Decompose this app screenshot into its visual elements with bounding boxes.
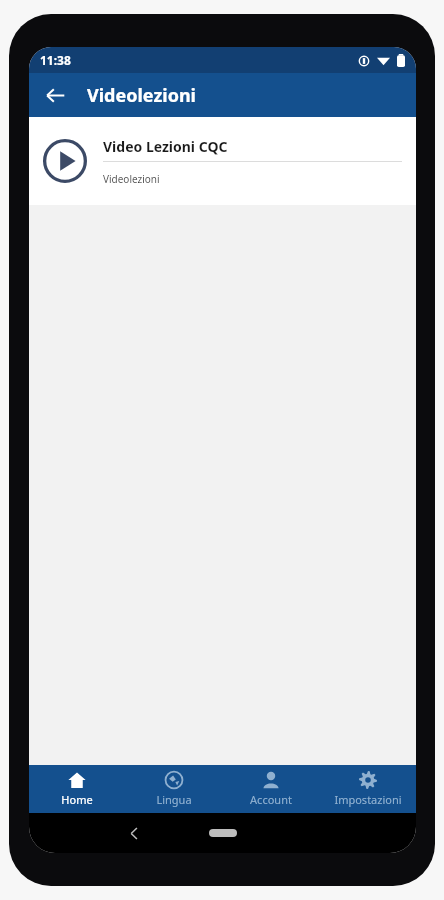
- staticText: Home: [61, 792, 93, 807]
- button[interactable]: Account: [222, 765, 319, 813]
- staticText: Videolezioni: [87, 83, 196, 108]
- button[interactable]: Impostazioni: [319, 765, 416, 813]
- button[interactable]: Home: [209, 829, 237, 837]
- button[interactable]: Lingua: [125, 765, 222, 813]
- staticText: 11:38: [40, 52, 71, 68]
- button[interactable]: Back: [35, 75, 75, 115]
- staticText: Lingua: [156, 792, 192, 807]
- button[interactable]: Video Lezioni CQC: [29, 117, 416, 205]
- staticText: Videolezioni: [103, 172, 160, 186]
- staticText: Account: [250, 792, 292, 807]
- staticText: Impostazioni: [334, 792, 402, 807]
- button[interactable]: System back: [121, 820, 147, 846]
- staticText: Video Lezioni CQC: [103, 137, 228, 156]
- button[interactable]: Home: [29, 765, 125, 813]
